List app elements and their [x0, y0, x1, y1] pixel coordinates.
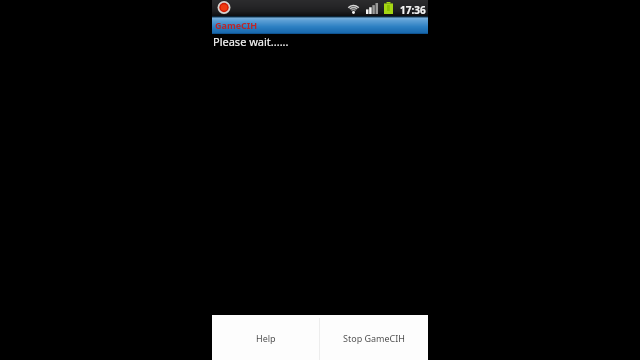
staticText: Please wait...... [213, 34, 289, 49]
other: Recording [217, 0, 231, 14]
staticText: GameCIH [215, 19, 258, 31]
button[interactable]: Stop GameCIH [320, 315, 428, 360]
staticText: Help [256, 332, 276, 344]
staticText: Stop GameCIH [343, 332, 406, 344]
staticText: 17:36 [400, 3, 426, 17]
button[interactable]: Help [212, 315, 319, 360]
